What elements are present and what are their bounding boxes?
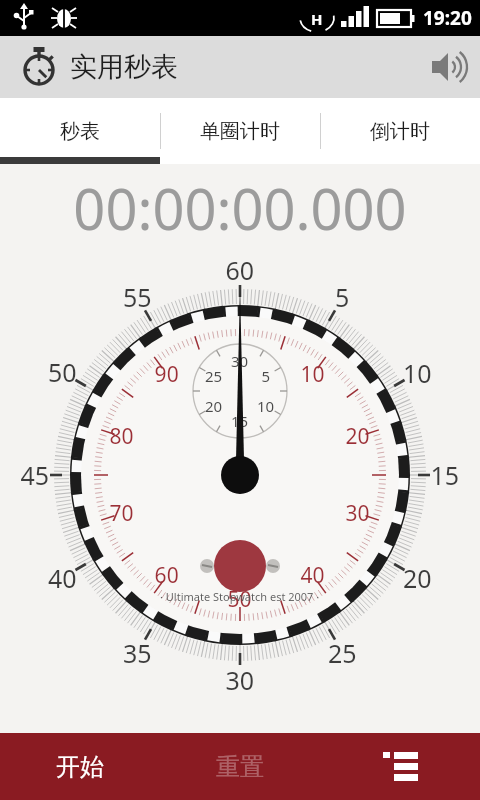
staticText: 19:20 [423,5,472,31]
button[interactable]: Sound [420,37,480,97]
staticText: 重置 [216,752,264,782]
button[interactable]: 倒计时 [320,98,480,164]
button[interactable]: 开始 [0,733,160,800]
button[interactable]: 单圈计时 [160,98,320,164]
staticText: 开始 [56,752,104,782]
button[interactable]: 秒表 [0,98,160,164]
staticText: 单圈计时 [200,119,280,144]
button[interactable]: 重置 [160,733,320,800]
staticText: 实用秒表 [70,50,178,84]
button[interactable]: Menu [320,733,480,800]
staticText: 00:00:00.000 [0,170,480,246]
staticText: 秒表 [60,119,100,144]
staticText: 倒计时 [370,119,430,144]
